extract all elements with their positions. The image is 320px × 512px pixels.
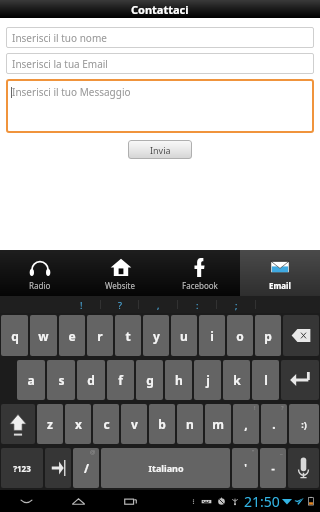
button[interactable]: e [59, 315, 85, 356]
button[interactable]: i [199, 315, 225, 356]
staticText: ! [80, 299, 83, 311]
button[interactable]: h [165, 360, 192, 400]
staticText: ? [118, 299, 122, 311]
staticText: Inserisci la tua Email [12, 57, 108, 71]
button[interactable]: s [47, 360, 75, 400]
button[interactable]: x [65, 404, 91, 444]
button[interactable]: , [139, 296, 177, 313]
staticText: s [58, 372, 65, 388]
staticText: r [97, 328, 103, 344]
button[interactable]: Radio [0, 250, 80, 296]
button[interactable]: , [233, 404, 259, 444]
button[interactable]: d [77, 360, 105, 400]
staticText: :) [301, 418, 307, 430]
staticText: : [196, 299, 199, 311]
button[interactable]: ?123 [1, 448, 43, 488]
button[interactable]: c [93, 404, 119, 444]
button[interactable]: : [178, 296, 216, 313]
button[interactable]: b [149, 404, 175, 444]
button[interactable]: w [30, 315, 57, 356]
button[interactable]: Recent apps [104, 490, 156, 512]
staticText: Italiano [148, 462, 184, 474]
button[interactable]: ! [63, 296, 100, 313]
button[interactable]: ' [232, 448, 258, 488]
staticText: 21:50 [244, 492, 280, 511]
staticText: ! [254, 404, 256, 412]
staticText: i [210, 328, 214, 344]
staticText: b [158, 416, 166, 432]
button[interactable]: l [252, 360, 279, 400]
button[interactable]: - [260, 448, 286, 488]
staticText: , [157, 299, 160, 311]
staticText: h [175, 372, 183, 388]
button[interactable]: Back [0, 490, 52, 512]
staticText: t [125, 328, 131, 344]
staticText: j [206, 372, 210, 388]
staticText: , [244, 416, 248, 432]
staticText: _ [280, 448, 283, 456]
staticText: y [153, 328, 160, 344]
staticText: Inserisci il tuo nome [12, 31, 107, 45]
button[interactable]: y [143, 315, 169, 356]
button[interactable]: . [261, 404, 287, 444]
button[interactable]: Voice input [288, 448, 319, 488]
staticText: w [38, 328, 49, 344]
button[interactable]: Website [80, 250, 160, 296]
button[interactable]: k [223, 360, 250, 400]
staticText: a [27, 372, 35, 388]
button[interactable]: t [115, 315, 141, 356]
staticText: g [146, 372, 154, 388]
button[interactable]: Inserisci il tuo Messaggio [6, 79, 314, 133]
button[interactable]: ; [217, 296, 255, 313]
button[interactable]: Email [240, 250, 320, 296]
staticText: Contattaci [131, 2, 189, 17]
button[interactable]: m [205, 404, 231, 444]
button[interactable]: Inserisci il tuo nome [6, 27, 314, 48]
button[interactable]: Backspace [283, 315, 319, 356]
staticText: / [84, 460, 89, 476]
button[interactable]: j [194, 360, 221, 400]
staticText: l [264, 372, 268, 388]
staticText: Website [105, 280, 136, 291]
button[interactable]: v [121, 404, 147, 444]
staticText: f [118, 372, 123, 388]
button[interactable]: Enter [281, 360, 319, 400]
button[interactable]: z [37, 404, 63, 444]
staticText: e [68, 328, 76, 344]
staticText: q [11, 328, 19, 344]
button[interactable]: Italiano [101, 448, 230, 488]
staticText: ? [281, 404, 284, 412]
button[interactable]: f [107, 360, 134, 400]
staticText: ?123 [13, 463, 31, 474]
staticText: n [186, 416, 194, 432]
button[interactable]: Tab [45, 448, 71, 488]
staticText: o [236, 328, 244, 344]
button[interactable]: :) [289, 404, 319, 444]
button[interactable]: g [136, 360, 163, 400]
staticText: c [103, 416, 110, 432]
staticText: z [47, 416, 53, 432]
button[interactable]: Home [52, 490, 104, 512]
button[interactable]: Shift [1, 404, 35, 444]
button[interactable]: o [227, 315, 253, 356]
button[interactable]: / [73, 448, 99, 488]
staticText: p [264, 328, 272, 344]
button[interactable]: ? [101, 296, 138, 313]
button[interactable]: Inserisci la tua Email [6, 53, 314, 74]
staticText: . [272, 416, 276, 432]
button[interactable]: Invia [128, 140, 192, 159]
button[interactable]: p [255, 315, 281, 356]
staticText: k [233, 372, 241, 388]
staticText: d [87, 372, 95, 388]
staticText: Email [269, 280, 291, 291]
button[interactable]: q [1, 315, 28, 356]
staticText: - [271, 461, 275, 475]
staticText: Radio [29, 280, 51, 291]
button[interactable]: u [171, 315, 197, 356]
button[interactable]: Facebook [160, 250, 240, 296]
staticText: ' [244, 461, 247, 475]
button[interactable]: n [177, 404, 203, 444]
staticText: @ [90, 448, 96, 456]
button[interactable]: r [87, 315, 113, 356]
button[interactable]: a [17, 360, 45, 400]
